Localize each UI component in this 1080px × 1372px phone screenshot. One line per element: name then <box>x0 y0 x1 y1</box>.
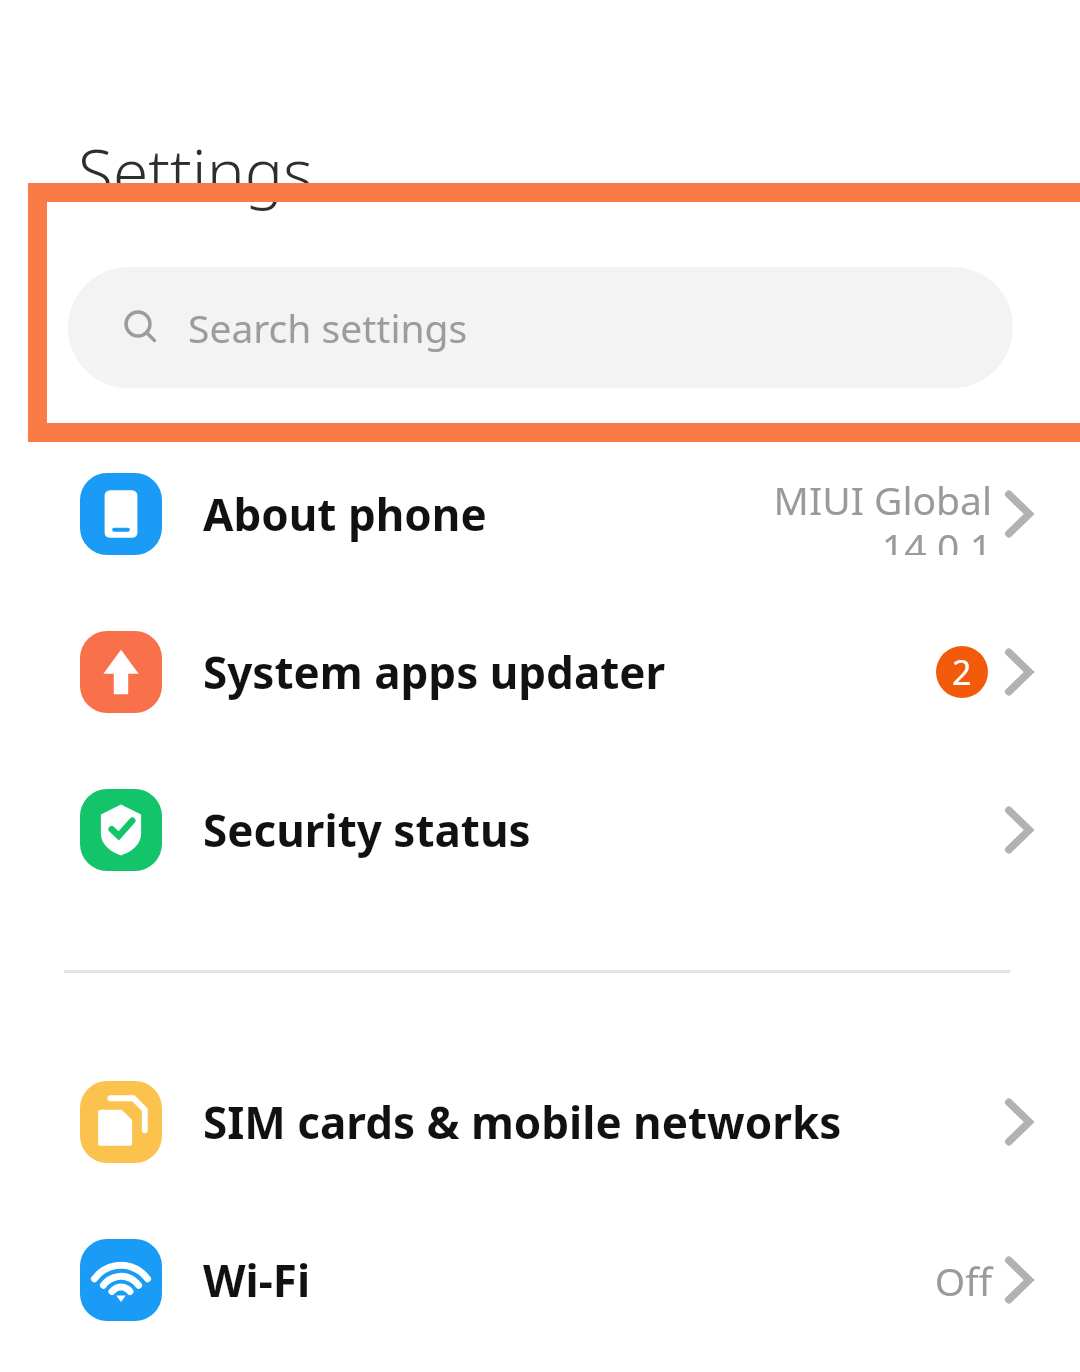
staticText: System apps updater <box>203 642 666 702</box>
staticText: 2 <box>952 649 972 695</box>
button[interactable]: About phone <box>0 473 1080 555</box>
staticText: MIUI Global 14.0.1 <box>773 473 992 555</box>
button[interactable]: Wi-Fi <box>0 1239 1080 1321</box>
staticText: Off <box>934 1254 992 1307</box>
button[interactable]: Search settings <box>68 267 1013 388</box>
button[interactable]: SIM cards & mobile networks <box>0 1081 1080 1163</box>
button[interactable]: System apps updater <box>0 631 1080 713</box>
staticText: Settings <box>78 128 314 215</box>
staticText: About phone <box>203 484 487 544</box>
button[interactable]: Security status <box>0 789 1080 871</box>
staticText: Wi-Fi <box>203 1250 311 1310</box>
staticText: SIM cards & mobile networks <box>203 1092 842 1152</box>
staticText: Security status <box>203 800 531 860</box>
staticText: Search settings <box>188 301 468 354</box>
